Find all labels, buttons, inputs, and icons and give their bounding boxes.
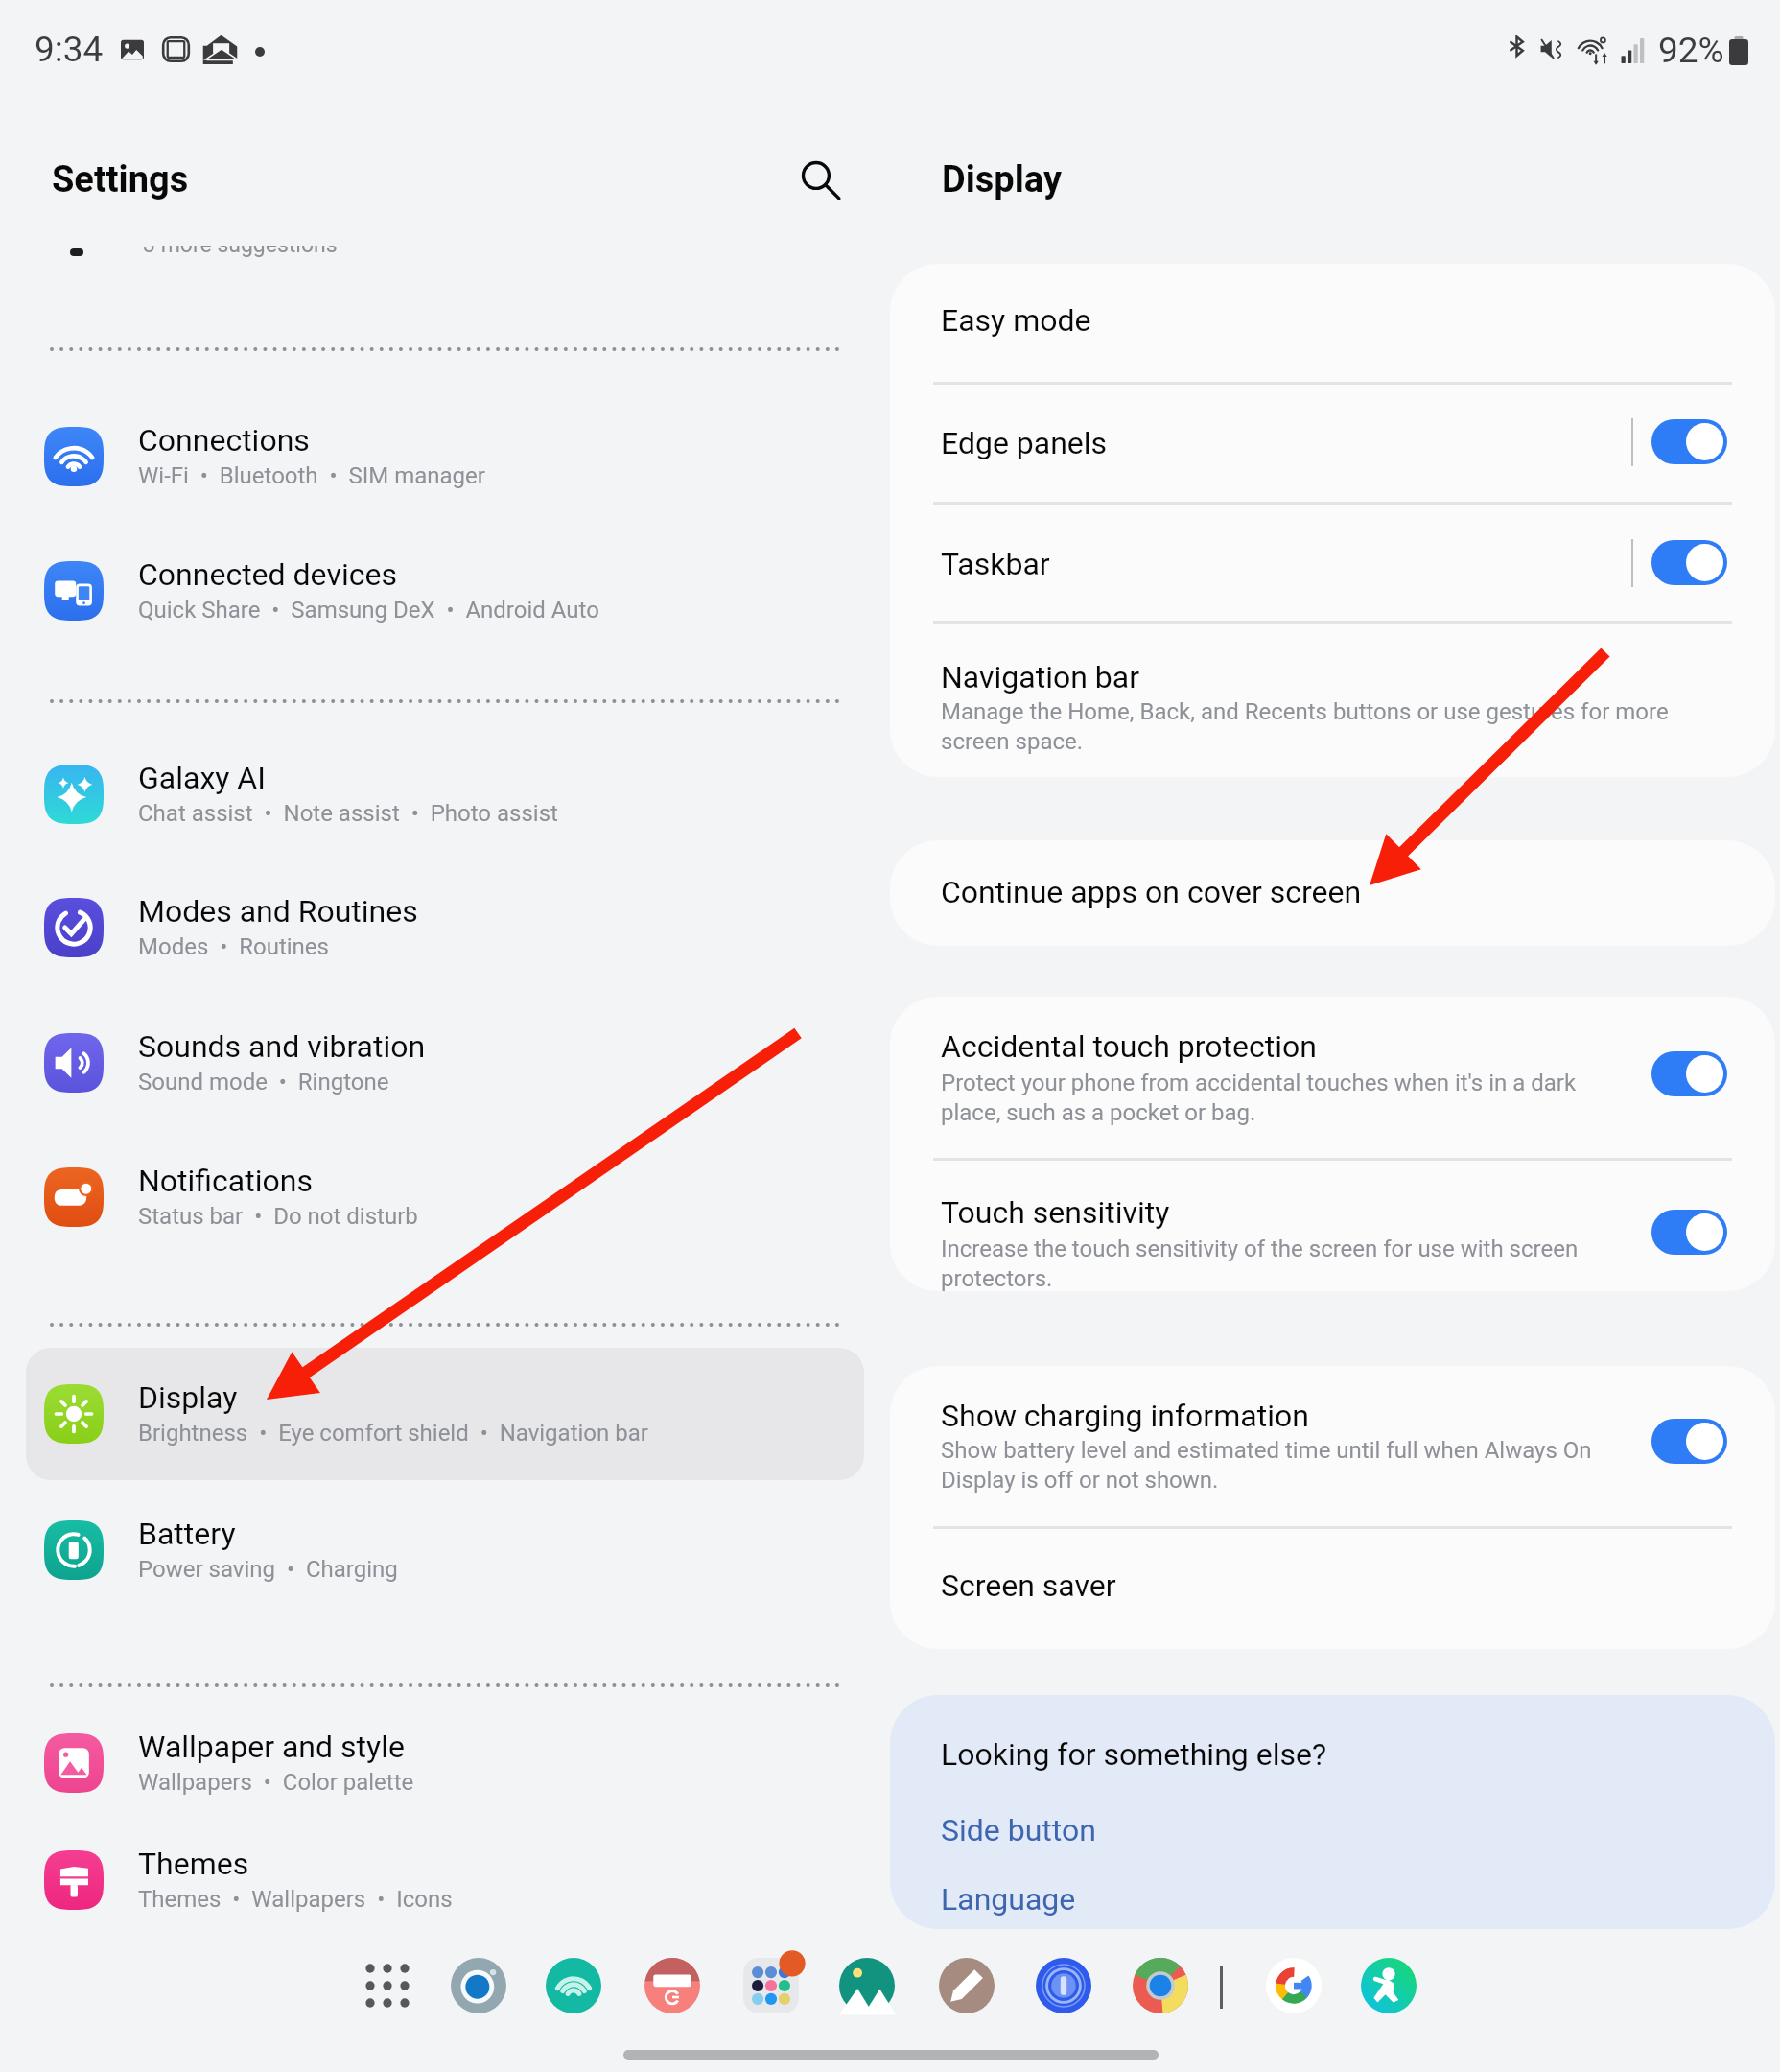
staticText: Show charging information [941,1398,1309,1434]
staticText: Modes and Routines [138,893,418,930]
button[interactable] [26,1814,864,1946]
button[interactable]: App 9 [1124,1949,1197,2022]
staticText: Connections [138,422,310,459]
staticText: Easy mode [941,302,1091,339]
staticText: Battery [138,1516,236,1552]
button[interactable]: App 6 [831,1949,903,2022]
button[interactable] [26,1131,864,1263]
staticText: Increase the touch sensitivity of the sc… [941,1236,1579,1262]
button[interactable] [890,382,1775,502]
button[interactable] [890,1158,1775,1291]
staticText: Sounds and vibration [138,1028,426,1065]
button[interactable]: App 7 [930,1949,1003,2022]
staticText: Notifications [138,1163,313,1199]
staticText: Taskbar [941,546,1050,582]
staticText: Show battery level and estimated time un… [941,1437,1592,1464]
staticText: Connected devices [138,556,397,593]
staticText: screen space. [941,728,1084,755]
staticText: Wi-Fi • Bluetooth • SIM manager [138,462,485,489]
staticText: Manage the Home, Back, and Recents butto… [941,698,1669,725]
button[interactable] [26,1484,864,1616]
button[interactable]: App 2 [442,1949,515,2022]
staticText: Edge panels [941,425,1108,461]
staticText: Quick Share • Samsung DeX • Android Auto [138,597,599,624]
button[interactable] [932,1876,1124,1922]
staticText: Power saving • Charging [138,1556,398,1583]
staticText: Settings [52,158,189,201]
button[interactable] [26,861,864,994]
staticText: protectors. [941,1265,1053,1292]
staticText: Wallpaper and style [138,1729,405,1765]
button[interactable]: Toggle on [1651,1051,1727,1096]
button[interactable]: Toggle on [1651,1419,1727,1464]
button[interactable]: App 1 [351,1949,424,2022]
button[interactable] [890,502,1775,621]
button[interactable] [26,997,864,1129]
staticText: Wallpapers • Color palette [138,1769,414,1796]
staticText: 92% [1658,30,1724,71]
button[interactable]: App 8 [1027,1949,1100,2022]
staticText: Screen saver [941,1567,1116,1604]
button[interactable]: App 4 [636,1949,709,2022]
staticText: Themes [138,1846,249,1882]
staticText: Galaxy AI [138,760,266,796]
staticText: Display [138,1379,238,1416]
button[interactable] [890,997,1775,1158]
button[interactable]: App 11 [1352,1949,1425,2022]
button[interactable] [932,1807,1124,1853]
staticText: Display [942,158,1063,201]
button[interactable] [26,390,864,523]
button[interactable] [890,840,1775,946]
staticText: Chat assist • Note assist • Photo assist [138,800,558,827]
staticText: 9:34 [35,29,104,70]
button[interactable] [890,1366,1775,1526]
button[interactable]: App 5 [735,1949,808,2022]
staticText: Sound mode • Ringtone [138,1069,389,1095]
staticText: Side button [941,1812,1096,1848]
staticText: Themes • Wallpapers • Icons [138,1886,453,1913]
button[interactable] [26,525,864,657]
staticText: Looking for something else? [941,1736,1327,1773]
button[interactable]: Toggle on [1651,540,1727,585]
staticText: Navigation bar [941,659,1139,695]
button[interactable]: Search [785,144,857,217]
button[interactable] [26,1697,864,1829]
button[interactable] [26,728,864,860]
staticText: 3 more suggestions [143,232,338,258]
staticText: Protect your phone from accidental touch… [941,1070,1577,1096]
button[interactable] [890,621,1775,777]
button[interactable] [890,1526,1775,1649]
staticText: Touch sensitivity [941,1194,1170,1231]
staticText: Continue apps on cover screen [941,874,1362,910]
button[interactable] [26,1348,864,1480]
staticText: Brightness • Eye comfort shield • Naviga… [138,1420,648,1447]
button[interactable] [890,264,1775,382]
staticText: Accidental touch protection [941,1028,1317,1065]
staticText: Modes • Routines [138,933,329,960]
staticText: Language [941,1881,1076,1918]
staticText: Status bar • Do not disturb [138,1203,418,1230]
button[interactable]: Toggle on [1651,1210,1727,1255]
button[interactable]: App 10 [1257,1949,1330,2022]
staticText: Display is off or not shown. [941,1467,1219,1494]
button[interactable]: Toggle on [1651,419,1727,464]
staticText: place, such as a pocket or bag. [941,1099,1256,1126]
button[interactable]: App 3 [537,1949,610,2022]
